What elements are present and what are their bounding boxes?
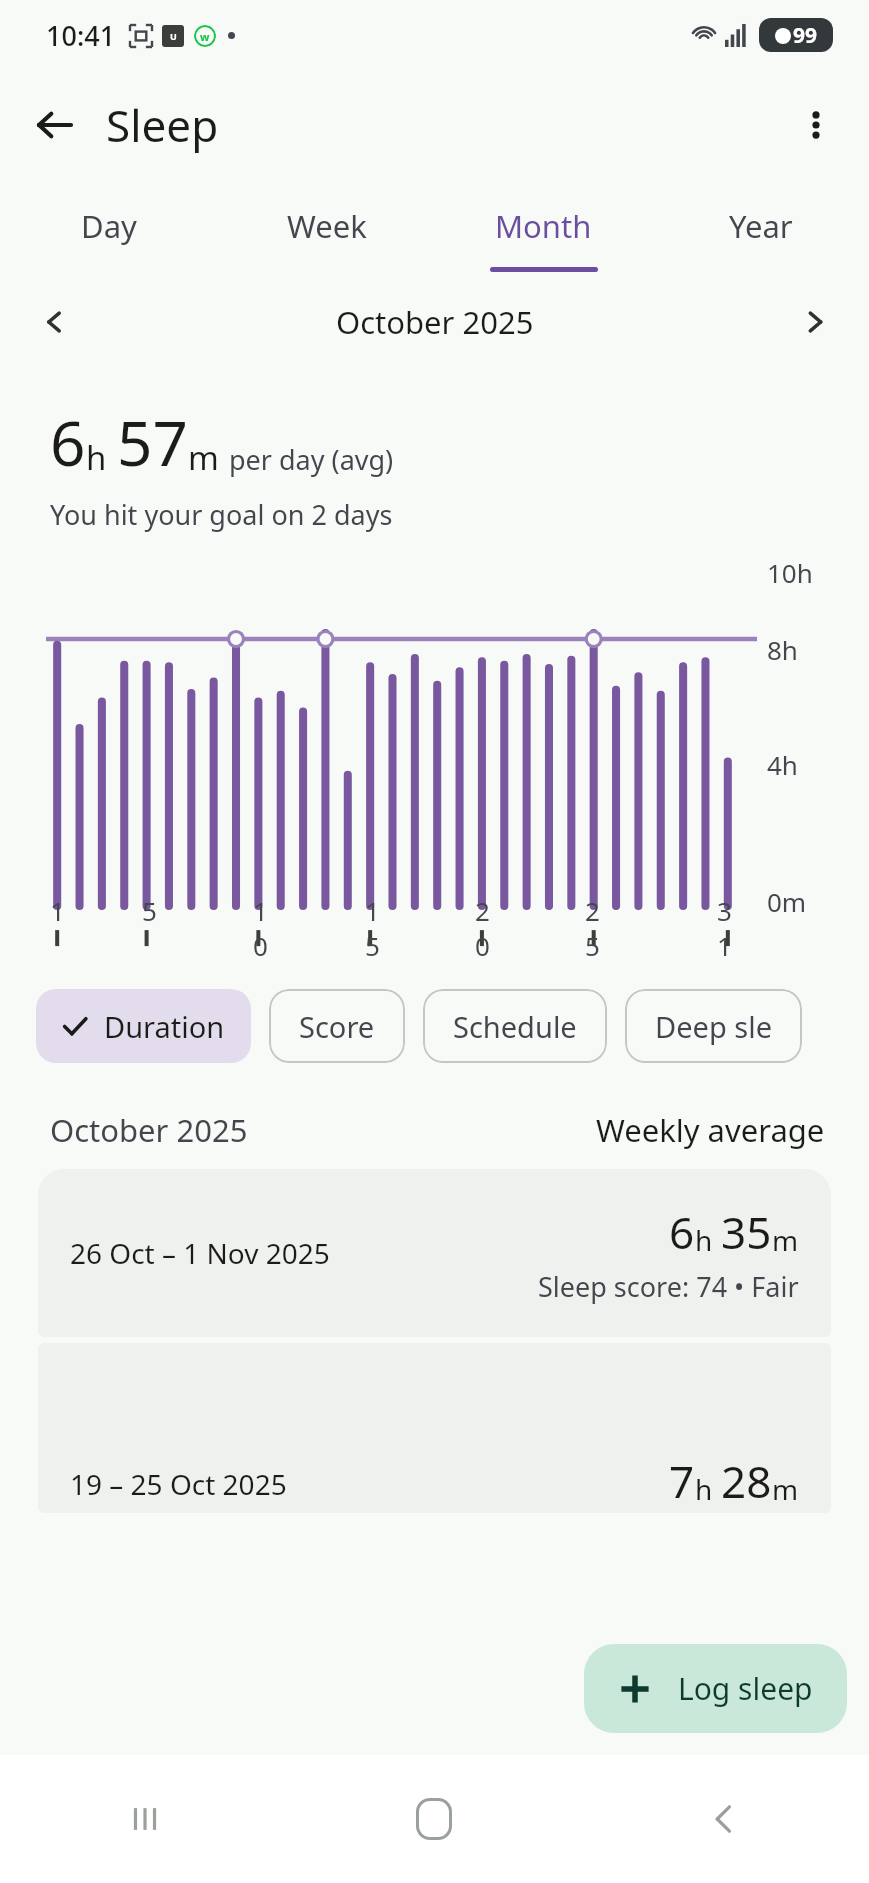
staticText: 1 [50,893,65,928]
staticText: 4h [767,747,798,782]
staticText: October 2025 [50,1109,248,1151]
staticText: 28 [721,1451,772,1511]
staticText: Weekly average [596,1109,825,1151]
staticText: Log sleep [678,1668,813,1709]
staticText: 26 Oct – 1 Nov 2025 [70,1234,330,1272]
button[interactable]: Home [289,1755,579,1883]
staticText: 57 [117,400,188,484]
button[interactable]: More options [785,94,847,156]
staticText: h [695,1470,713,1508]
staticText: October 2025 [336,301,534,343]
button[interactable]: Day [0,180,218,272]
staticText: 5 [142,893,157,928]
staticText: Score [299,1007,375,1046]
button[interactable]: Back [579,1755,869,1883]
staticText: 25 [585,893,607,963]
button[interactable]: Log sleep [584,1644,847,1733]
button[interactable]: Week [218,180,435,272]
staticText: Duration [104,1007,225,1046]
staticText: 7 [669,1451,695,1511]
button[interactable]: Next month [787,294,843,350]
staticText: m [188,435,219,480]
staticText: 8h [767,632,798,667]
staticText: 6 [669,1202,695,1262]
staticText: m [772,1470,799,1508]
button[interactable]: Recent apps [0,1755,289,1883]
staticText: 10 [253,893,276,963]
staticText: Sleep [106,95,219,155]
staticText: 10:41 [46,17,116,54]
button[interactable]: Back [22,93,86,157]
staticText: Sleep score: 74 • Fair [538,1268,799,1305]
staticText: Schedule [453,1007,577,1046]
staticText: 99 [793,21,818,50]
staticText: 31 [717,893,739,963]
button[interactable]: Deep sle [625,989,802,1063]
staticText: You hit your goal on 2 days [50,496,393,533]
staticText: 0m [767,884,807,919]
staticText: 10h [767,555,813,590]
staticText: h [86,435,107,480]
staticText: 35 [721,1202,772,1262]
staticText: Deep sle [655,1007,772,1046]
staticText: Week [287,205,367,247]
staticText: w [200,29,210,44]
button[interactable]: Year [652,180,869,272]
button[interactable]: 19 – 25 Oct 2025 [38,1343,831,1513]
button[interactable]: Duration [36,989,251,1063]
staticText: 15 [365,893,387,963]
staticText: m [772,1221,799,1259]
staticText: 20 [475,893,497,963]
staticText: Year [729,205,793,247]
staticText: per day (avg) [229,441,394,478]
button[interactable]: Score [269,989,405,1063]
button[interactable]: 26 Oct – 1 Nov 2025 [38,1169,831,1337]
staticText: Day [81,205,137,247]
staticText: 19 – 25 Oct 2025 [70,1465,287,1503]
staticText: h [695,1221,713,1259]
staticText: U [170,30,177,42]
button[interactable]: Previous month [26,294,82,350]
staticText: 6 [50,400,86,484]
button[interactable]: Schedule [423,989,607,1063]
button[interactable]: Month [435,180,652,272]
staticText: Month [495,205,592,247]
